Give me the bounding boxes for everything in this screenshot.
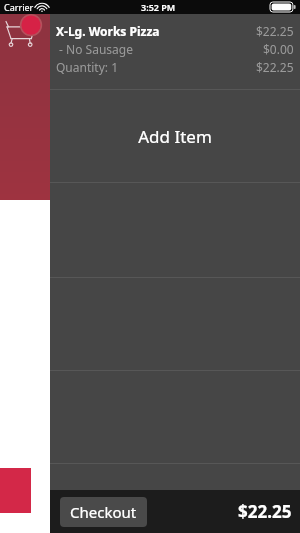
staticText: $22.25 [238,500,292,523]
staticText: $22.25 [256,59,294,75]
staticText: - No Sausage [56,41,263,57]
staticText: $0.00 [263,41,294,57]
staticText: X-Lg. Works Pizza [56,23,256,39]
staticText: Checkout [70,502,137,522]
staticText: Quantity: 1 [56,59,256,75]
button[interactable]: Cart [0,0,50,200]
button[interactable]: Add Item [50,90,300,182]
button[interactable]: X-Lg. Works Pizza [50,14,300,89]
button[interactable]: Checkout [60,497,147,527]
staticText: Add Item [138,125,212,148]
staticText: Carrier [4,1,34,13]
staticText: $22.25 [256,23,294,39]
staticText: 3:52 PM [141,1,176,13]
